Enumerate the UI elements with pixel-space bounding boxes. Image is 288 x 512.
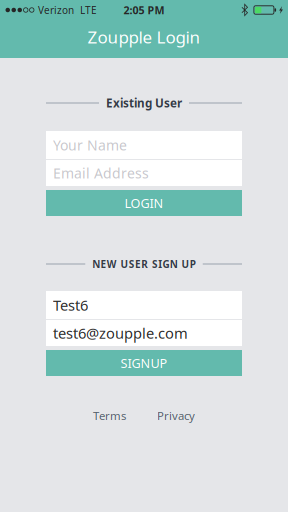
staticText: NEW USER SIGN UP xyxy=(92,257,196,271)
staticText: 2:05 PM xyxy=(123,3,164,17)
staticText: test6@zoupple.com xyxy=(53,323,188,343)
staticText: Verizon xyxy=(38,3,74,17)
staticText: LTE xyxy=(80,3,97,17)
staticText: Email Address xyxy=(53,163,149,183)
button[interactable]: SIGNUP xyxy=(46,350,242,376)
staticText: LOGIN xyxy=(124,194,163,212)
staticText: Existing User xyxy=(106,95,182,111)
staticText: Terms xyxy=(93,408,126,423)
button[interactable]: LOGIN xyxy=(46,190,242,216)
staticText: Your Name xyxy=(53,135,127,155)
button[interactable]: Privacy xyxy=(157,408,195,423)
staticText: Privacy xyxy=(157,408,195,423)
staticText: SIGNUP xyxy=(120,354,167,372)
staticText: Test6 xyxy=(53,295,88,315)
button[interactable]: Terms xyxy=(93,408,126,423)
staticText: Zoupple Login xyxy=(87,25,200,49)
